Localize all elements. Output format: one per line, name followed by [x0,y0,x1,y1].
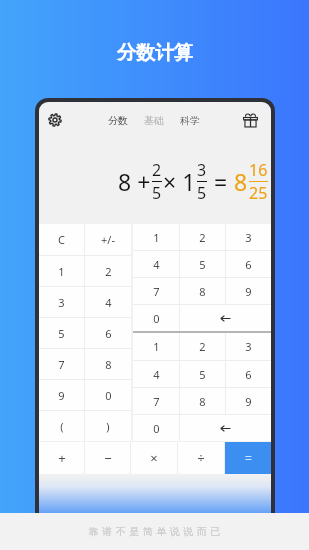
staticText: 科学 [180,114,200,127]
staticText: ÷ [197,449,205,467]
button[interactable]: 2 [180,333,225,360]
staticText: 3 [58,295,65,310]
staticText: 5 [197,182,207,204]
staticText: 8 [199,284,206,299]
button[interactable]: 6 [226,361,271,387]
staticText: 6 [105,326,112,341]
button[interactable]: = [225,442,271,474]
button[interactable]: +/- [85,224,131,255]
button[interactable]: ( [39,411,84,441]
staticText: 16 [249,159,268,181]
button[interactable]: 7 [133,388,179,414]
staticText: × 1 [163,166,196,197]
staticText: +/- [101,232,115,247]
button[interactable]: 分数 [104,109,132,132]
button[interactable]: 8 [180,388,225,414]
staticText: 9 [245,394,252,409]
staticText: 8 [199,394,206,409]
button[interactable]: 1 [133,333,179,360]
staticText: 靠谱不是简单说说而已 [87,525,222,538]
staticText: 分数 [108,114,128,127]
staticText: 3 [197,159,207,181]
staticText: 4 [105,295,112,310]
button[interactable]: 3 [226,224,271,250]
button[interactable]: Gift [238,108,262,132]
staticText: 5 [199,257,206,272]
staticText: 9 [58,388,65,403]
staticText: 分数计算 [117,41,193,65]
button[interactable]: 0 [85,380,131,410]
staticText: 7 [153,284,160,299]
staticText: 8 [234,166,248,197]
button[interactable]: 0 [133,415,179,441]
button[interactable]: 9 [226,278,271,304]
staticText: 8 + [118,166,151,197]
staticText: 5 [58,326,65,341]
button[interactable]: C [39,224,84,255]
button[interactable]: 6 [85,318,131,348]
staticText: 2 [152,159,162,181]
staticText: 1 [153,339,160,354]
button[interactable]: 1 [133,224,179,250]
staticText: 1 [58,264,65,279]
button[interactable]: ) [85,411,131,441]
button[interactable]: Backspace [180,415,271,441]
staticText: 2 [105,264,112,279]
button[interactable]: 1 [39,256,84,286]
staticText: ) [106,419,110,434]
staticText: 6 [245,257,252,272]
staticText: 3 [245,339,252,354]
button[interactable]: 3 [39,287,84,317]
staticText: 1 [153,230,160,245]
button[interactable]: 4 [133,361,179,387]
button[interactable]: 7 [133,278,179,304]
staticText: − [104,449,112,467]
staticText: 9 [245,284,252,299]
button[interactable]: + [39,442,84,474]
staticText: + [58,449,66,467]
button[interactable]: 8 [85,349,131,379]
button[interactable]: Settings [43,108,67,132]
staticText: 4 [153,257,160,272]
button[interactable]: 2 [180,224,225,250]
button[interactable]: 3 [226,333,271,360]
staticText: 6 [245,367,252,382]
button[interactable]: 0 [133,305,179,331]
button[interactable]: 2 [85,256,131,286]
staticText: 2 [199,339,206,354]
staticText: × [150,449,158,467]
staticText: ( [60,419,64,434]
staticText: 8 [105,357,112,372]
button[interactable]: 4 [85,287,131,317]
button[interactable]: 9 [226,388,271,414]
button[interactable]: 5 [180,251,225,277]
button[interactable]: 4 [133,251,179,277]
button[interactable]: 基础 [140,109,168,132]
staticText: 3 [245,230,252,245]
staticText: 基础 [144,114,164,127]
button[interactable]: 7 [39,349,84,379]
staticText: 0 [153,311,160,326]
button[interactable]: 5 [39,318,84,348]
staticText: 7 [153,394,160,409]
button[interactable]: × [131,442,177,474]
staticText: 25 [249,182,268,204]
button[interactable]: 6 [226,251,271,277]
staticText: 2 [199,230,206,245]
button[interactable]: 8 [180,278,225,304]
staticText: 0 [153,421,160,436]
staticText: C [58,232,65,247]
button[interactable]: ÷ [178,442,224,474]
button[interactable]: 科学 [176,109,204,132]
staticText: 7 [58,357,65,372]
staticText: 4 [153,367,160,382]
staticText: = [208,166,234,197]
button[interactable]: 5 [180,361,225,387]
button[interactable]: 9 [39,380,84,410]
staticText: 5 [152,182,162,204]
button[interactable]: − [85,442,130,474]
staticText: 5 [199,367,206,382]
staticText: 0 [105,388,112,403]
button[interactable]: Backspace [180,305,271,331]
staticText: = [245,450,252,466]
